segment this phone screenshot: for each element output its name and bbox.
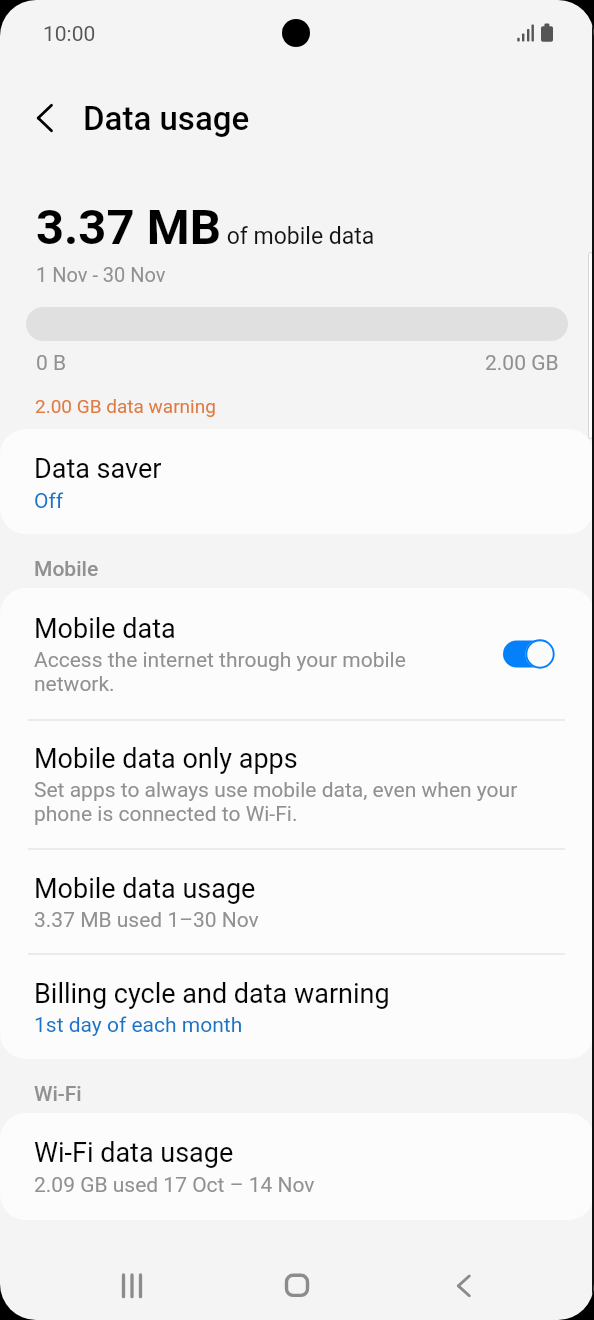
staticText: 3.37 MB used 1–30 Nov <box>34 908 550 932</box>
staticText: 2.00 GB <box>485 351 559 375</box>
button[interactable] <box>0 955 594 1059</box>
staticText: 2.09 GB used 17 Oct – 14 Nov <box>34 1173 550 1197</box>
staticText: Wi-Fi data usage <box>34 1137 234 1168</box>
staticText: Access the internet through your mobile … <box>34 648 434 696</box>
staticText: 2.00 GB data warning <box>35 396 216 418</box>
staticText: Off <box>34 489 554 513</box>
button[interactable] <box>0 429 594 534</box>
staticText: 3.37 MB <box>36 200 221 256</box>
button[interactable]: Home <box>257 1245 337 1320</box>
staticText: Mobile data <box>34 613 176 644</box>
button[interactable]: Back <box>422 1245 502 1320</box>
staticText: of mobile data <box>221 223 375 250</box>
staticText: 10:00 <box>43 22 96 46</box>
staticText: Billing cycle and data warning <box>34 978 390 1009</box>
staticText: 1 Nov - 30 Nov <box>36 264 166 287</box>
staticText: Mobile <box>34 557 99 581</box>
staticText: Wi-Fi <box>34 1082 82 1106</box>
staticText: 0 B <box>36 351 67 375</box>
staticText: Mobile data usage <box>34 873 256 904</box>
button[interactable] <box>0 721 594 849</box>
button[interactable] <box>0 850 594 954</box>
button[interactable] <box>0 588 594 720</box>
button[interactable] <box>0 1113 594 1220</box>
staticText: Data saver <box>34 453 162 484</box>
staticText: Set apps to always use mobile data, even… <box>34 778 550 826</box>
staticText: 1st day of each month <box>34 1013 550 1037</box>
staticText: Data usage <box>83 100 250 138</box>
staticText: Mobile data only apps <box>34 743 298 774</box>
button[interactable]: Navigate up <box>21 94 69 142</box>
button[interactable]: Recent apps <box>92 1245 172 1320</box>
button[interactable]: Mobile data <box>503 638 556 670</box>
